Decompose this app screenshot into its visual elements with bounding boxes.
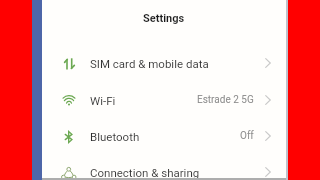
staticText: Wi-Fi	[90, 94, 116, 107]
staticText: Connection & sharing	[90, 166, 200, 179]
button[interactable]: Wi-Fi	[42, 82, 286, 118]
staticText: Settings	[143, 12, 185, 25]
button[interactable]: Connection & sharing	[42, 154, 286, 180]
staticText: Estrade 2 5G	[197, 94, 254, 106]
staticText: Off	[240, 130, 254, 142]
staticText: Bluetooth	[90, 130, 140, 143]
button[interactable]: Bluetooth	[42, 118, 286, 154]
button[interactable]: SIM card & mobile data	[42, 45, 286, 81]
staticText: SIM card & mobile data	[90, 57, 209, 70]
